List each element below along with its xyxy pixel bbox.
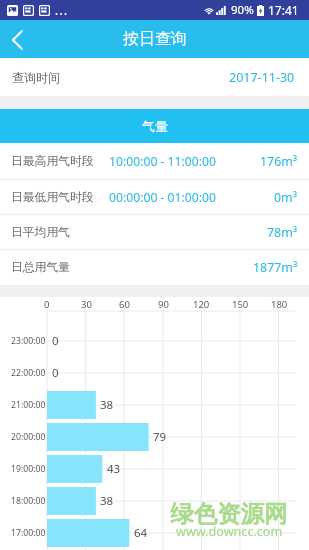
button[interactable]: 日平均用气	[0, 215, 309, 249]
staticText: 20:00:00	[11, 431, 46, 443]
staticText: 日总用气量	[11, 260, 70, 275]
staticText: 查询时间	[12, 70, 60, 85]
staticText: 0m³	[274, 189, 298, 206]
staticText: 78m³	[267, 224, 298, 241]
staticText: 23:00:00	[11, 335, 46, 347]
staticText: 19:00:00	[11, 463, 46, 475]
staticText: 43	[107, 461, 121, 477]
staticText: 17:41	[268, 2, 299, 18]
button[interactable]: Back	[0, 20, 36, 58]
staticText: 30	[81, 298, 92, 311]
button[interactable]: 日最高用气时段	[0, 143, 309, 179]
button[interactable]: 查询时间	[0, 58, 309, 96]
staticText: 60	[119, 298, 130, 311]
staticText: 64	[134, 525, 148, 541]
staticText: www.downcc.com	[176, 523, 283, 540]
staticText: 150	[232, 298, 249, 311]
button[interactable]: 日最低用气时段	[0, 180, 309, 214]
staticText: 0	[52, 333, 59, 349]
staticText: 2017-11-30	[229, 69, 295, 86]
staticText: 绿色资源网	[170, 499, 288, 529]
staticText: 38	[100, 397, 114, 413]
staticText: 日最高用气时段	[11, 154, 94, 169]
button[interactable]: 日总用气量	[0, 250, 309, 285]
staticText: 18:00:00	[11, 495, 46, 507]
staticText: 22:00:00	[11, 367, 46, 379]
staticText: 38	[100, 493, 114, 509]
staticText: 21:00:00	[11, 399, 46, 411]
staticText: 10:00:00 - 11:00:00	[109, 153, 216, 170]
staticText: 气量	[142, 118, 168, 134]
staticText: 176m³	[260, 153, 298, 170]
staticText: 00:00:00 - 01:00:00	[109, 189, 216, 206]
staticText: 1877m³	[253, 259, 298, 276]
staticText: 120	[193, 298, 210, 311]
staticText: 0	[44, 298, 50, 311]
staticText: 按日查询	[123, 29, 187, 49]
staticText: 17:00:00	[11, 527, 46, 539]
staticText: 180	[271, 298, 288, 311]
staticText: 0	[52, 365, 59, 381]
staticText: 90%	[231, 2, 254, 18]
staticText: 日平均用气	[11, 225, 70, 240]
staticText: 90	[158, 298, 169, 311]
staticText: 日最低用气时段	[11, 190, 94, 205]
staticText: 79	[153, 429, 167, 445]
